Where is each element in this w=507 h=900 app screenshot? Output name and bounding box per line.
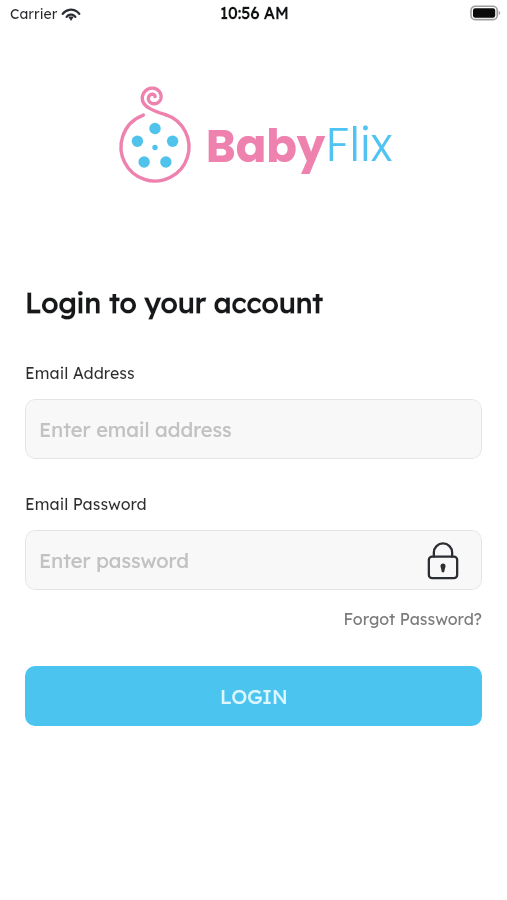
- staticText: Carrier: [10, 5, 58, 23]
- staticText: LOGIN: [220, 684, 288, 709]
- button[interactable]: LOGIN: [25, 666, 482, 726]
- staticText: Email Address: [25, 363, 135, 383]
- staticText: Email Password: [25, 494, 147, 514]
- staticText: Enter email address: [39, 417, 232, 442]
- staticText: Login to your account: [25, 285, 324, 320]
- button[interactable]: Forgot Password?: [318, 605, 482, 633]
- staticText: Flix: [326, 112, 393, 178]
- staticText: 10:56 AM: [220, 3, 289, 23]
- staticText: Forgot Password?: [343, 609, 482, 629]
- staticText: Baby: [206, 115, 326, 178]
- staticText: Enter password: [39, 548, 189, 573]
- button[interactable]: Show password: [420, 537, 466, 583]
- button[interactable]: Enter password: [25, 530, 482, 590]
- button[interactable]: Enter email address: [25, 399, 482, 459]
